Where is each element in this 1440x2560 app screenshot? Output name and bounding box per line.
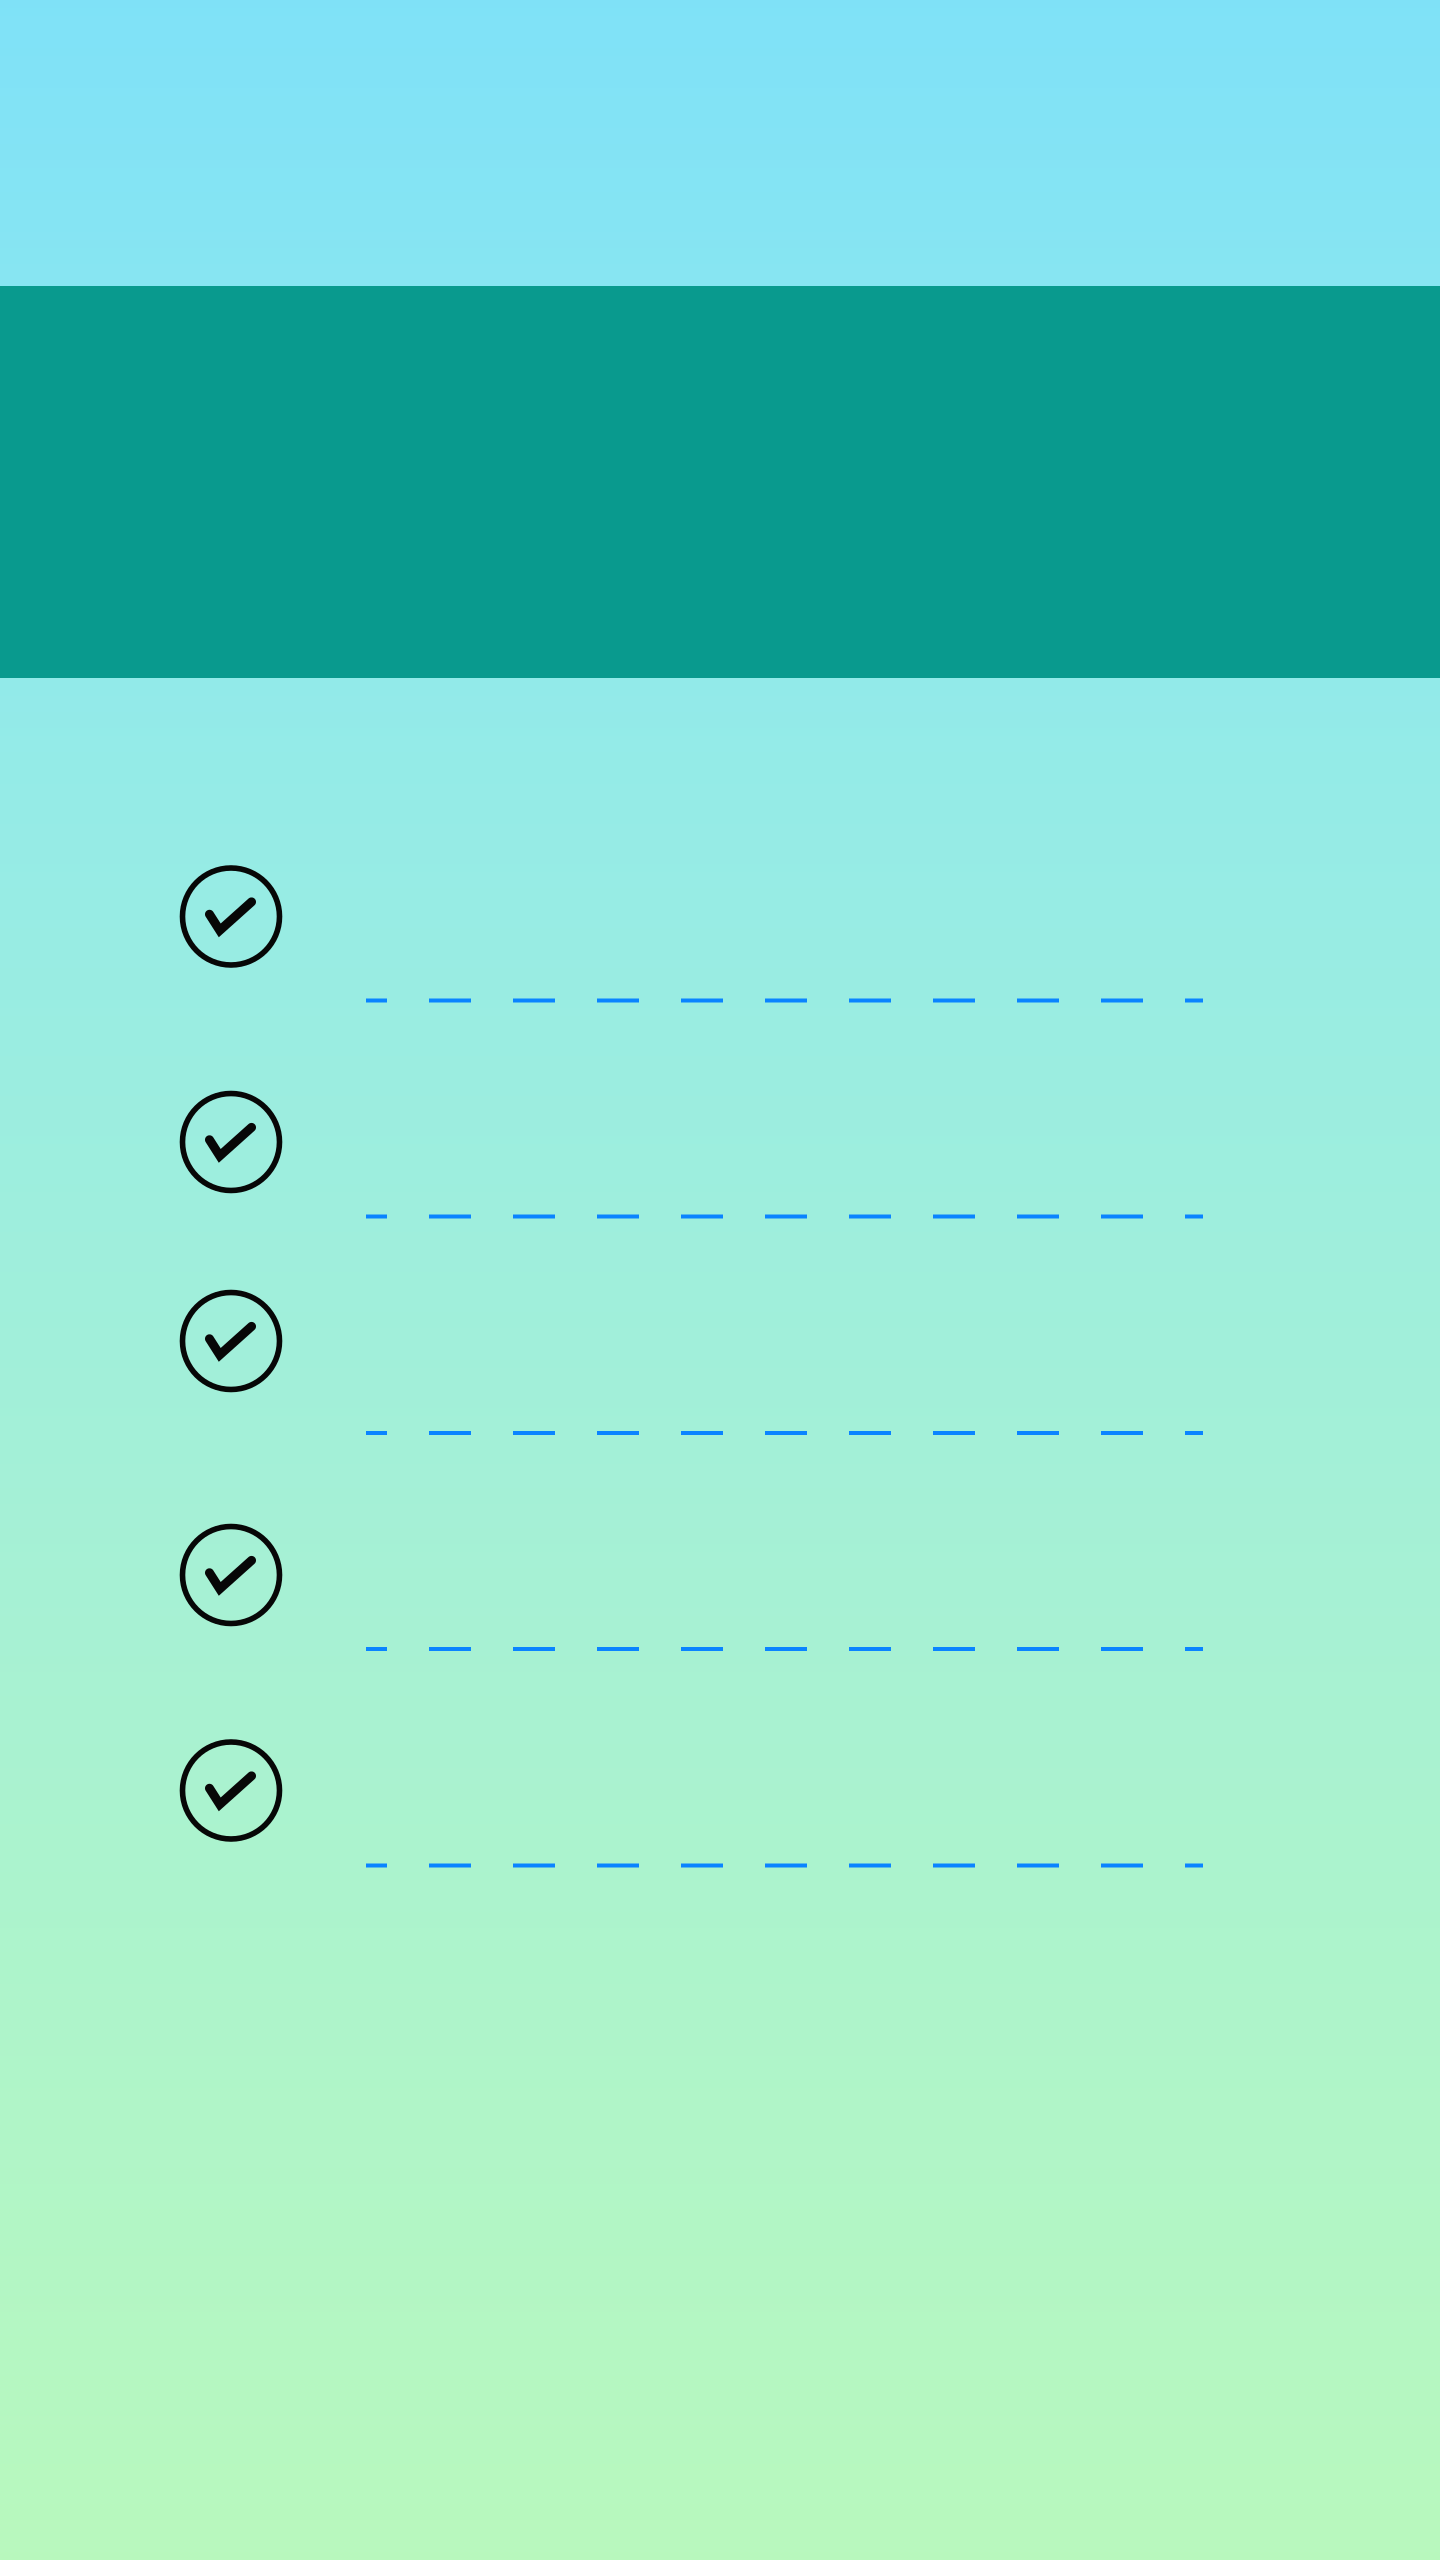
button[interactable]: Task 3, completed <box>0 1290 1440 1435</box>
button[interactable]: Task 4, completed <box>0 1524 1440 1651</box>
button[interactable]: Task 2, completed <box>0 1091 1440 1218</box>
button[interactable]: Task 5, completed <box>0 1739 1440 1867</box>
button[interactable]: Task 1, completed <box>0 865 1440 1002</box>
